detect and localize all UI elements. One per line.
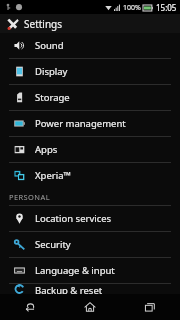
button[interactable]: Settings bbox=[0, 14, 180, 33]
button[interactable]: Sound bbox=[0, 33, 180, 58]
staticText: Backup & reset bbox=[35, 284, 103, 294]
staticText: Storage bbox=[35, 91, 70, 104]
button[interactable]: Back bbox=[0, 294, 60, 320]
button[interactable]: Backup & reset bbox=[0, 284, 180, 294]
staticText: 15:05 bbox=[156, 2, 177, 13]
other: Settings bbox=[6, 18, 19, 31]
button[interactable]: Recent apps bbox=[120, 294, 180, 320]
button[interactable]: Security bbox=[0, 232, 180, 257]
button[interactable]: Xperia™ bbox=[0, 163, 180, 188]
button[interactable]: Home bbox=[60, 294, 120, 320]
staticText: Xperia™ bbox=[35, 169, 71, 182]
staticText: Location services bbox=[35, 212, 112, 225]
staticText: PERSONAL bbox=[9, 192, 50, 202]
staticText: Sound bbox=[35, 39, 64, 52]
button[interactable]: Storage bbox=[0, 85, 180, 110]
button[interactable]: Language & input bbox=[0, 258, 180, 283]
button[interactable]: Power management bbox=[0, 111, 180, 136]
button[interactable]: Location services bbox=[0, 206, 180, 231]
staticText: Apps bbox=[35, 143, 58, 156]
staticText: Display bbox=[35, 65, 68, 78]
staticText: Language & input bbox=[35, 264, 115, 277]
button[interactable]: Display bbox=[0, 59, 180, 84]
staticText: 100% bbox=[123, 3, 141, 13]
button[interactable]: Apps bbox=[0, 137, 180, 162]
staticText: Settings bbox=[24, 17, 63, 31]
staticText: Security bbox=[35, 238, 71, 251]
staticText: Power management bbox=[35, 117, 126, 130]
